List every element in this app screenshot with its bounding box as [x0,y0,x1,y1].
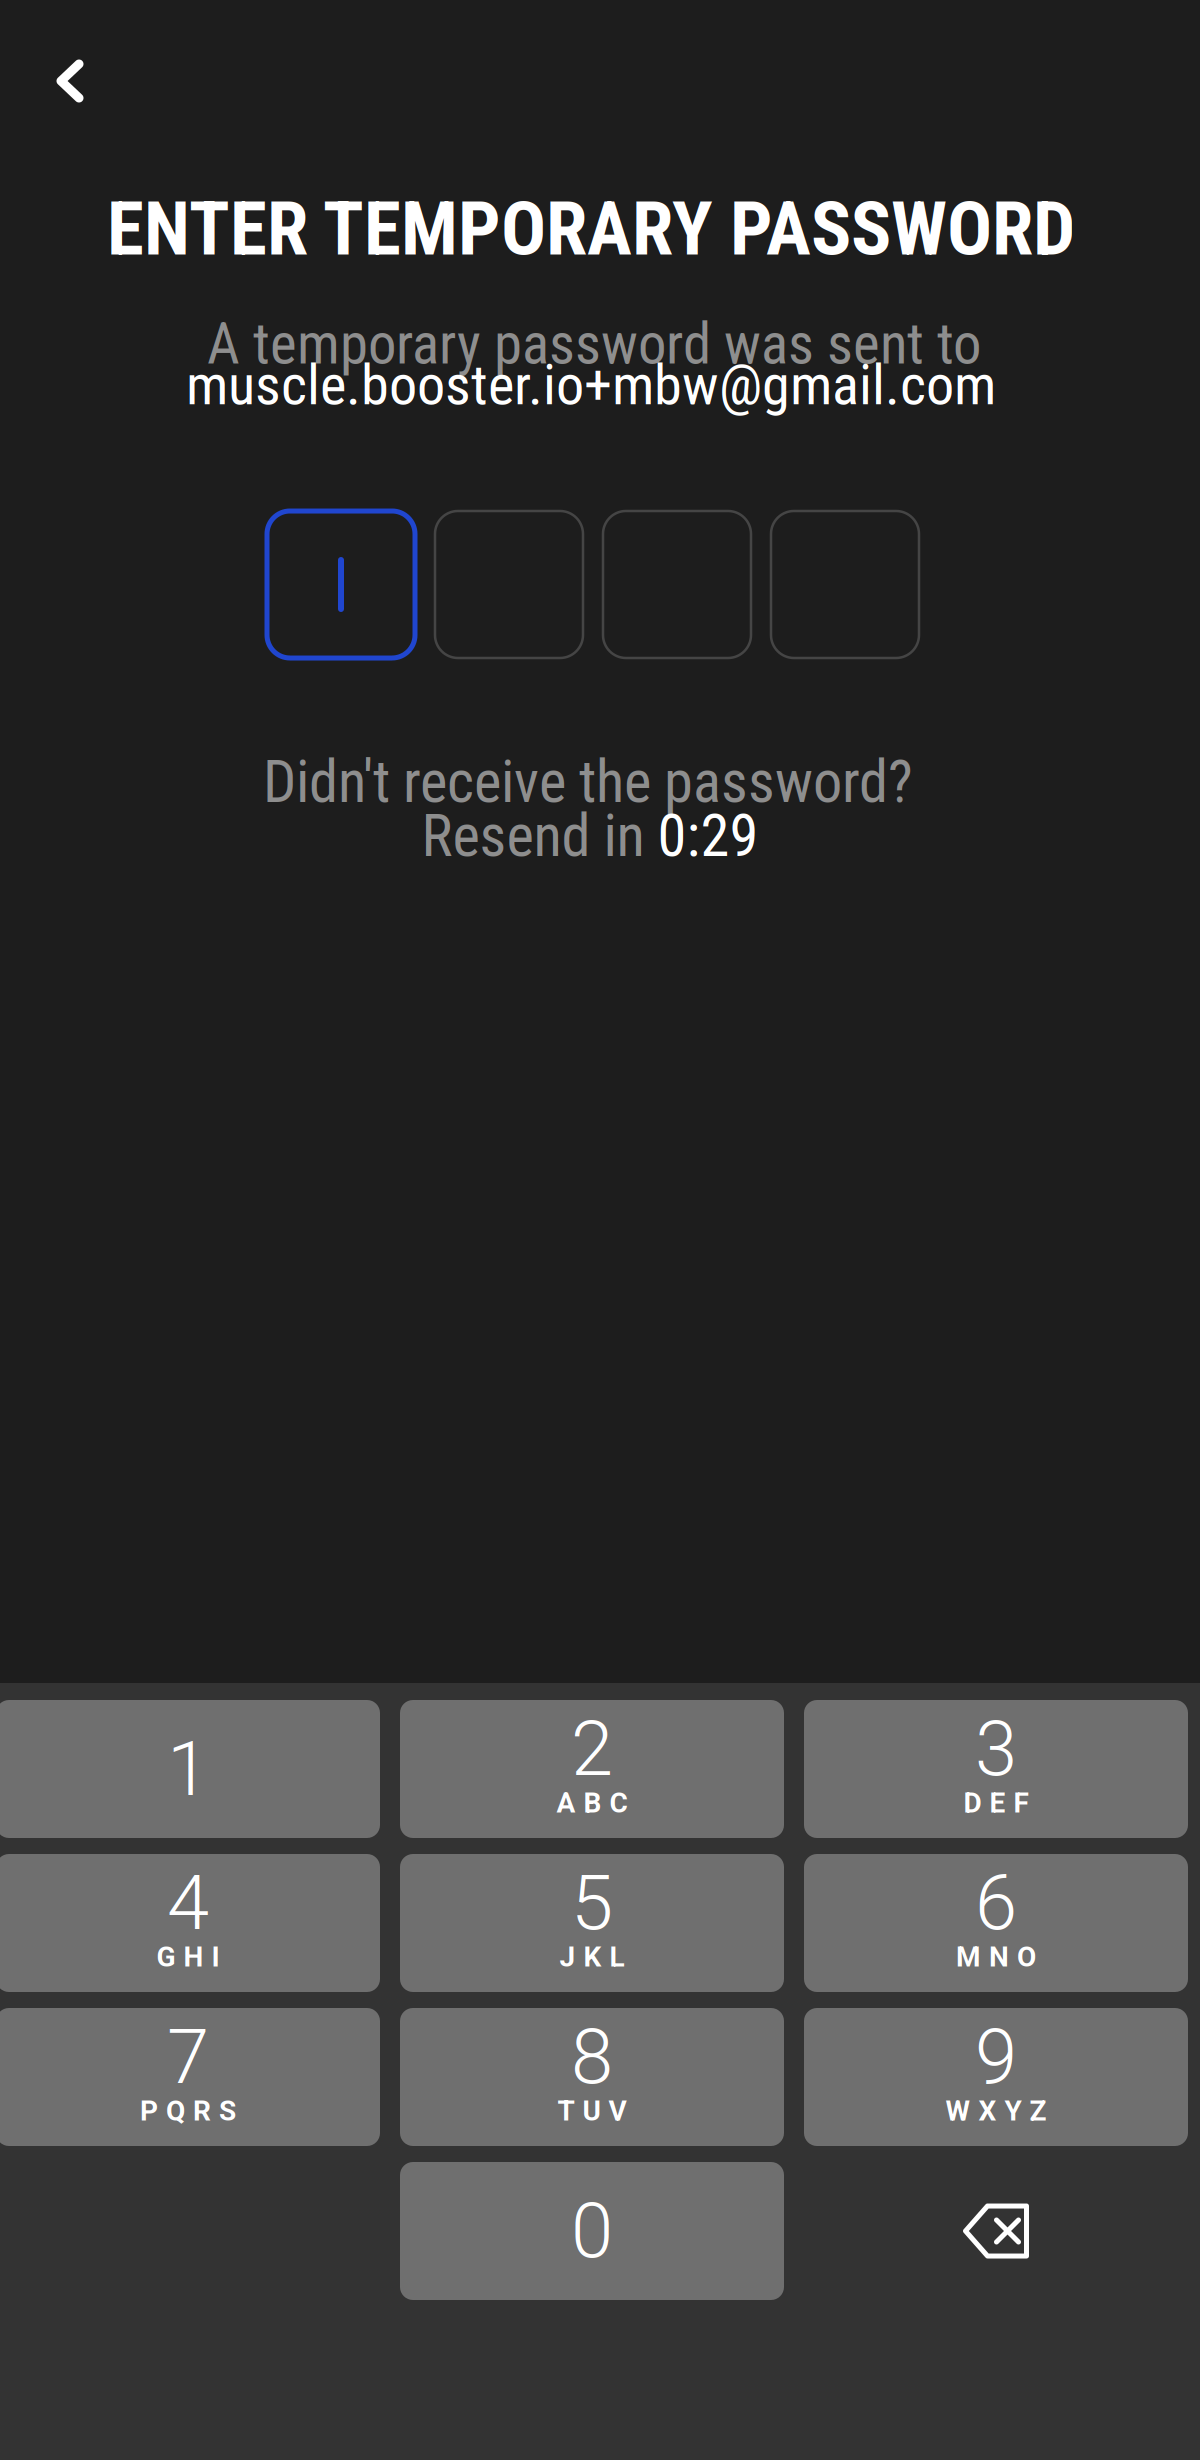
staticText: MNO [956,1941,1036,1973]
staticText: 8 [571,2012,613,2102]
staticText: JKL [559,1941,624,1973]
button[interactable]: 4 [0,1854,380,1992]
staticText: 7 [167,2012,209,2102]
staticText: 3 [975,1704,1017,1794]
staticText: 4 [167,1858,209,1948]
staticText: PQRS [140,2095,236,2127]
staticText: DEF [963,1787,1028,1819]
staticText: 0:29 [657,802,758,870]
staticText: WXYZ [945,2095,1046,2127]
button[interactable]: 7 [0,2008,380,2146]
staticText: 6 [975,1858,1017,1948]
button[interactable]: 3 [804,1700,1188,1838]
button[interactable]: Delete [804,2162,1188,2300]
staticText: 2 [571,1704,613,1794]
staticText: 5 [571,1858,613,1948]
button[interactable]: 9 [804,2008,1188,2146]
staticText: 1 [167,1724,209,1814]
staticText: Didn't receive the password? [263,748,913,816]
staticText: Resend in [421,802,657,870]
button[interactable]: 6 [804,1854,1188,1992]
button[interactable]: 8 [400,2008,784,2146]
staticText: muscle.booster.io+mbw@gmail.com [186,352,996,418]
staticText: GHI [156,1941,219,1973]
staticText: 0 [571,2186,613,2276]
staticText: ENTER TEMPORARY PASSWORD [107,185,1075,273]
staticText: 9 [975,2012,1017,2102]
button[interactable]: 2 [400,1700,784,1838]
button[interactable]: 5 [400,1854,784,1992]
staticText: A temporary password was sent to [207,311,981,377]
button[interactable]: 0 [400,2162,784,2300]
button[interactable]: Back [22,33,118,129]
button[interactable]: 1 [0,1700,380,1838]
staticText: TUV [557,2095,626,2127]
staticText: ABC [556,1787,627,1819]
